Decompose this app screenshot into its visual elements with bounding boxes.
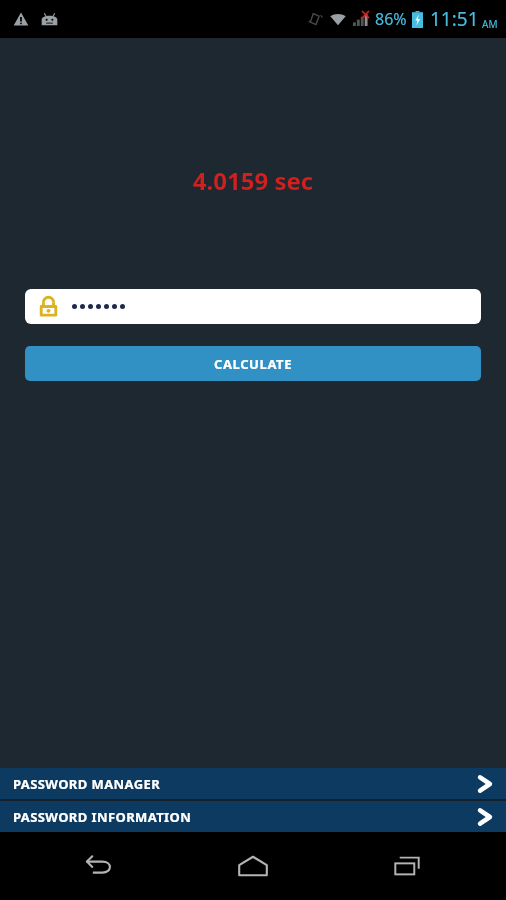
staticText: 86% [375,8,407,30]
button[interactable]: Back [44,832,154,900]
staticText: 4.0159 sec [0,164,506,197]
staticText: PASSWORD MANAGER [13,775,161,793]
staticText: PASSWORD INFORMATION [13,808,192,826]
button[interactable]: Recent apps [352,832,462,900]
staticText: AM [482,17,498,31]
button[interactable]: PASSWORD INFORMATION [0,801,506,832]
button[interactable]: CALCULATE [25,346,481,381]
button[interactable]: PASSWORD MANAGER [0,768,506,799]
staticText: 11:51 [430,6,479,32]
button[interactable] [25,289,481,324]
staticText: CALCULATE [214,355,293,373]
button[interactable]: Home [198,832,308,900]
